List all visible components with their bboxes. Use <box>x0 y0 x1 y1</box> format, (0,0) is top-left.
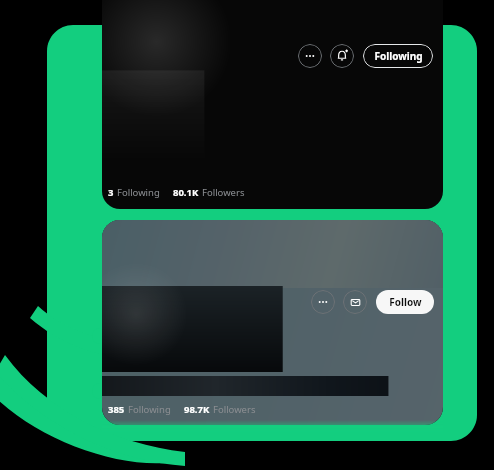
staticText: Followers <box>213 403 256 416</box>
button[interactable]: Notifications <box>330 44 354 68</box>
button[interactable]: More options <box>102 0 443 209</box>
staticText: 3 <box>108 186 114 199</box>
staticText: Followers <box>202 186 245 199</box>
staticText: 385 <box>108 403 125 416</box>
button[interactable]: Following <box>363 44 433 68</box>
button[interactable]: More options <box>102 220 443 425</box>
staticText: 80.1K <box>173 186 199 199</box>
staticText: Following <box>117 186 160 199</box>
button[interactable]: More options <box>298 44 322 68</box>
button[interactable]: Message <box>343 290 367 314</box>
staticText: Follow <box>389 295 422 309</box>
button[interactable]: More options <box>311 290 335 314</box>
button[interactable]: Follow <box>376 290 434 314</box>
staticText: Following <box>374 49 423 63</box>
staticText: 98.7K <box>184 403 210 416</box>
staticText: Following <box>128 403 171 416</box>
